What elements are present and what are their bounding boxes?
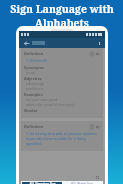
button[interactable]: Copy (89, 124, 94, 129)
button[interactable]: ASL (American Sign Language) (22, 182, 62, 184)
staticText: ASL (American Sign Language) (29, 182, 56, 184)
staticText: Alphabets (35, 16, 89, 30)
button[interactable]: Speak (95, 124, 100, 129)
staticText: 1. (n) benefit (26, 58, 48, 63)
staticText: advantage (26, 81, 44, 86)
button[interactable]: Definition (21, 48, 103, 118)
staticText: Examples (24, 92, 43, 97)
button[interactable]: Back (22, 39, 30, 47)
staticText: Similar (24, 108, 38, 113)
staticText: usefulness (26, 86, 45, 91)
staticText: Adjective (24, 76, 42, 81)
staticText: good (26, 70, 35, 75)
staticText: Synonyms (24, 65, 44, 70)
staticText: for your own good (26, 97, 58, 102)
button[interactable]: Close ad (95, 175, 100, 180)
staticText: Sign Language with (10, 2, 114, 16)
button[interactable]: More options (96, 40, 102, 46)
button[interactable]: BSL (British Sign Language) (62, 182, 102, 184)
staticText: what's the good of worrying? (26, 102, 76, 107)
staticText: Definition (24, 124, 44, 129)
staticText: BSL (British Sign Language) (71, 182, 93, 184)
staticText: Definition (24, 51, 44, 56)
staticText: 1. (a) having desirable or positive qual… (26, 131, 100, 146)
button[interactable]: Speak (95, 51, 100, 56)
button[interactable]: Definition (21, 121, 103, 151)
button[interactable]: Copy (89, 51, 94, 56)
